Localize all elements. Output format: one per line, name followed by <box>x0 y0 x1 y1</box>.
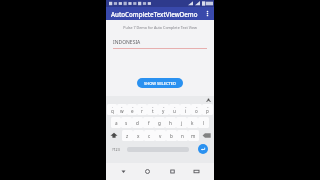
button[interactable]: 5 <box>147 104 158 115</box>
staticText: 8 <box>185 105 187 108</box>
button[interactable]: h <box>165 117 176 128</box>
button[interactable]: g <box>154 117 165 128</box>
staticText: SHOW SELECTED <box>144 81 176 86</box>
button[interactable]: k <box>187 117 198 128</box>
staticText: AutoCompleteTextViewDemo <box>111 10 201 18</box>
button[interactable]: Recents <box>166 165 179 178</box>
staticText: 1 <box>112 105 114 108</box>
button[interactable]: Back <box>117 165 130 178</box>
button[interactable]: f <box>143 117 154 128</box>
staticText: ?123 <box>112 147 120 152</box>
staticText: n <box>181 133 184 139</box>
staticText: k <box>191 120 194 126</box>
button[interactable]: v <box>155 130 166 141</box>
staticText: l <box>203 120 205 126</box>
button[interactable]: 2 <box>117 104 127 115</box>
staticText: x <box>137 133 140 139</box>
button[interactable]: 1 <box>107 104 117 115</box>
staticText: Pulse 7 Demo for Auto Complete Text View <box>106 25 214 30</box>
staticText: u <box>173 108 176 114</box>
staticText: a <box>115 120 118 126</box>
button[interactable]: n <box>177 130 188 141</box>
button[interactable]: m <box>188 130 199 141</box>
staticText: 7 <box>174 105 176 108</box>
staticText: f <box>148 120 150 126</box>
staticText: 2 <box>121 105 123 108</box>
button[interactable]: Shift <box>106 130 122 141</box>
button[interactable]: d <box>132 117 143 128</box>
button[interactable]: Backspace <box>199 130 214 141</box>
staticText: o <box>195 108 198 114</box>
button[interactable]: l <box>198 117 209 128</box>
staticText: r <box>141 108 143 114</box>
staticText: INDONESIA <box>113 39 141 46</box>
staticText: 9 <box>196 105 198 108</box>
button[interactable]: 9 <box>191 104 202 115</box>
staticText: q <box>111 108 114 114</box>
staticText: g <box>158 120 161 126</box>
button[interactable]: Enter <box>198 144 208 154</box>
staticText: z <box>126 133 129 139</box>
staticText: m <box>191 133 196 139</box>
staticText: 0 <box>207 105 209 108</box>
button[interactable]: 4 <box>137 104 147 115</box>
staticText: 6 <box>163 105 165 108</box>
staticText: d <box>136 120 139 126</box>
button[interactable]: 6 <box>158 104 169 115</box>
button[interactable]: SHOW SELECTED <box>137 78 183 88</box>
staticText: c <box>148 133 151 139</box>
staticText: e <box>131 108 134 114</box>
button[interactable]: a <box>111 117 121 128</box>
staticText: t <box>152 108 154 114</box>
staticText: 5 <box>152 105 154 108</box>
staticText: p <box>206 108 209 114</box>
button[interactable]: ?123 <box>107 143 124 155</box>
staticText: w <box>120 108 124 114</box>
button[interactable]: Voice input <box>205 97 211 103</box>
button[interactable]: j <box>176 117 187 128</box>
button[interactable]: 0 <box>202 104 213 115</box>
staticText: v <box>159 133 162 139</box>
button[interactable]: INDONESIA <box>113 39 207 49</box>
button[interactable]: 8 <box>180 104 191 115</box>
staticText: 4 <box>141 105 143 108</box>
staticText: 3 <box>132 105 134 108</box>
button[interactable]: s <box>121 117 132 128</box>
staticText: b <box>170 133 173 139</box>
button[interactable]: z <box>122 130 133 141</box>
button[interactable]: Hide keyboard <box>190 165 203 178</box>
staticText: i <box>185 108 187 114</box>
button[interactable]: Home <box>141 165 154 178</box>
button[interactable]: More options <box>201 7 214 20</box>
button[interactable]: c <box>144 130 155 141</box>
staticText: j <box>181 120 183 126</box>
staticText: s <box>125 120 128 126</box>
button[interactable]: 3 <box>127 104 137 115</box>
button[interactable]: x <box>133 130 144 141</box>
button[interactable]: 7 <box>169 104 180 115</box>
button[interactable]: b <box>166 130 177 141</box>
staticText: h <box>169 120 172 126</box>
staticText: y <box>162 108 165 114</box>
